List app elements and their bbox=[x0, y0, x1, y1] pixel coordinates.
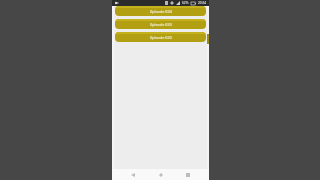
button[interactable]: Home bbox=[154, 169, 168, 180]
button[interactable]: Episode 632 bbox=[115, 32, 206, 42]
button[interactable]: Back bbox=[126, 169, 140, 180]
button[interactable]: Episode 634 bbox=[115, 6, 206, 16]
staticText: Episode 634 bbox=[150, 9, 172, 14]
staticText: 62% bbox=[182, 1, 189, 5]
staticText: Episode 632 bbox=[150, 35, 172, 40]
staticText: 20:34 bbox=[198, 1, 207, 5]
button[interactable]: Recents bbox=[181, 169, 195, 180]
staticText: Episode 633 bbox=[150, 22, 172, 27]
button[interactable]: Episode 633 bbox=[115, 19, 206, 29]
